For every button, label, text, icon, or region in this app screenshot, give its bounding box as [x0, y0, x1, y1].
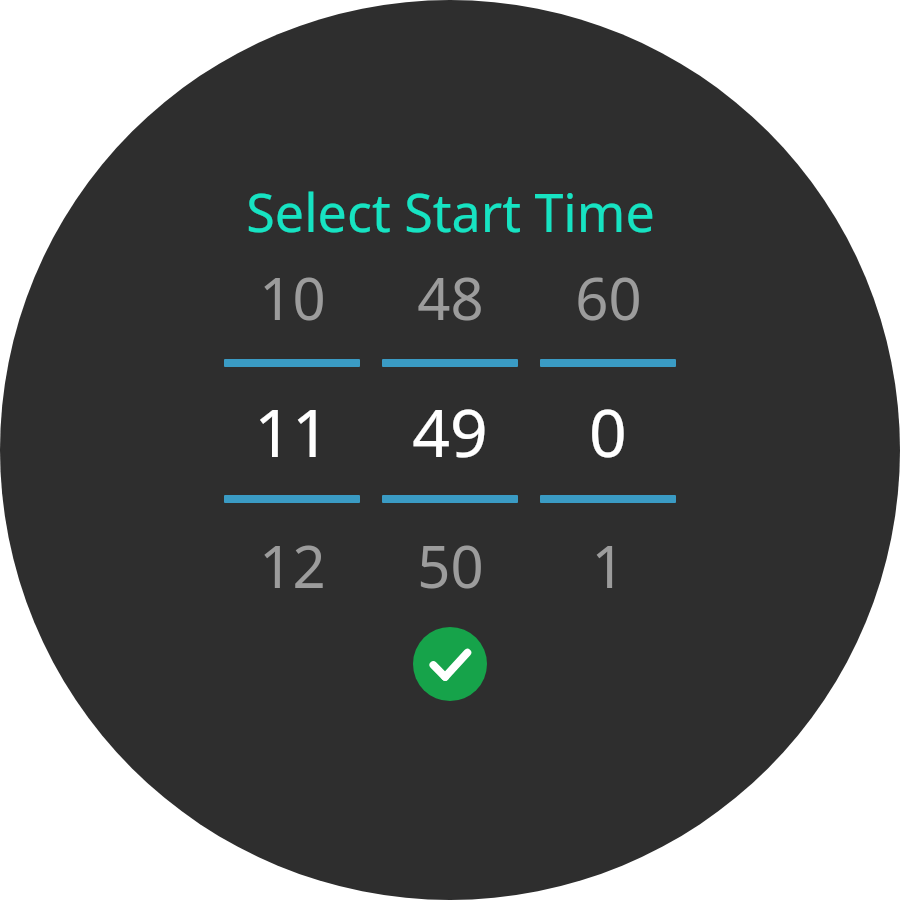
staticText: 48	[417, 258, 484, 337]
staticText: Select Start Time	[246, 176, 655, 247]
staticText: 50	[417, 526, 484, 605]
button[interactable]: 1	[529, 517, 687, 613]
button[interactable]: 50	[371, 517, 529, 613]
staticText: 60	[575, 258, 642, 337]
button[interactable]: Select Start Time	[246, 176, 655, 247]
button[interactable]: 48	[371, 249, 529, 345]
button[interactable]: 49	[371, 367, 529, 495]
button[interactable]: 12	[213, 517, 371, 613]
button[interactable]: 11	[213, 367, 371, 495]
staticText: 0	[589, 386, 627, 476]
button[interactable]: 60	[529, 249, 687, 345]
staticText: 10	[259, 258, 326, 337]
button[interactable]: 0	[529, 367, 687, 495]
staticText: 49	[412, 386, 488, 476]
staticText: 11	[254, 386, 330, 476]
button[interactable]: 10	[213, 249, 371, 345]
staticText: 1	[591, 526, 625, 605]
button[interactable]: Confirm time	[413, 627, 487, 701]
staticText: 12	[259, 526, 326, 605]
